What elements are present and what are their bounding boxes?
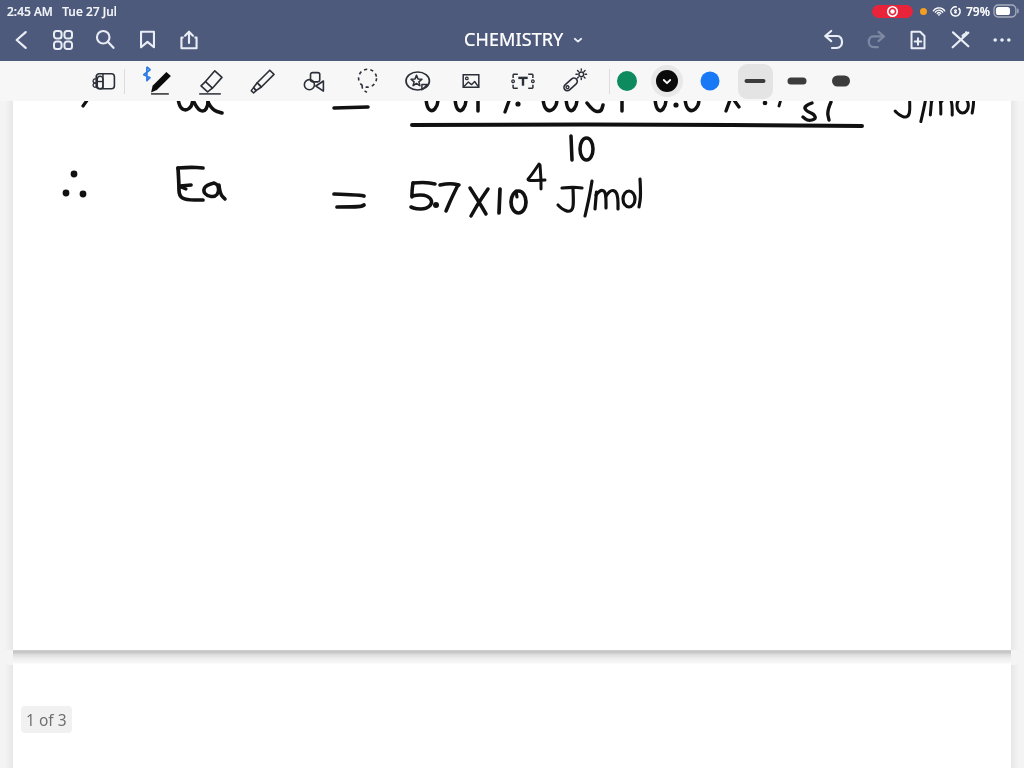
button[interactable]: Pages [42,22,84,61]
button[interactable]: Image [449,61,493,101]
button[interactable]: Back [0,22,42,61]
button[interactable]: Stroke width [823,61,859,101]
button[interactable]: Shapes [293,61,337,101]
button[interactable]: Highlighter [240,61,284,101]
button[interactable]: More [981,22,1023,61]
button[interactable]: Magic [552,61,596,101]
staticText: 79% [966,3,990,19]
button[interactable]: Eraser [188,61,232,101]
button[interactable]: Insert [82,61,126,101]
button[interactable]: CHEMISTRY [458,24,589,57]
button[interactable]: Lasso [345,61,389,101]
button[interactable]: Search [84,22,126,61]
staticText: 1 of 3 [26,709,67,730]
button[interactable]: Add page [897,22,939,61]
button[interactable]: Close [939,22,981,61]
button[interactable]: Text [501,61,545,101]
button[interactable]: Colour [693,61,727,101]
button[interactable]: Stroke width [779,61,815,101]
button[interactable]: Undo [813,22,855,61]
button[interactable]: Pen [136,61,180,101]
button[interactable]: Share [168,22,210,61]
button[interactable]: Redo [855,22,897,61]
button[interactable]: Colour [650,61,684,101]
button[interactable]: Sticker [396,61,440,101]
staticText: 2:45 AM Tue 27 Jul [7,3,117,19]
staticText: CHEMISTRY [464,27,564,52]
button[interactable]: Bookmark [126,22,168,61]
button[interactable]: Stroke width [737,61,773,101]
button[interactable]: Colour [610,61,644,101]
